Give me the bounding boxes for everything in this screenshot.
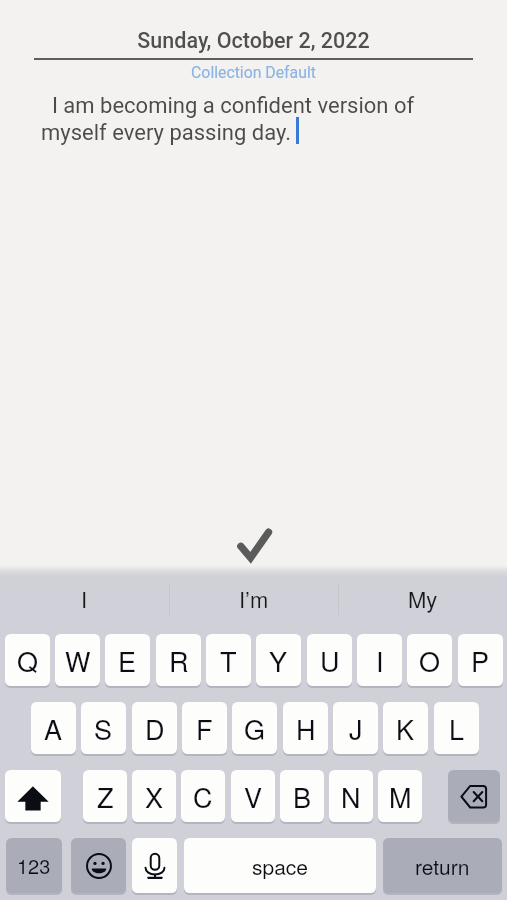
staticText: T <box>220 641 237 680</box>
staticText: V <box>244 777 263 816</box>
staticText: A <box>44 709 63 748</box>
staticText: L <box>449 709 465 748</box>
staticText: I’m <box>239 583 269 615</box>
button[interactable]: L <box>434 702 479 754</box>
button[interactable]: Shift <box>5 770 61 822</box>
staticText: C <box>193 777 213 816</box>
staticText: M <box>389 777 412 816</box>
button[interactable]: O <box>407 634 452 686</box>
button[interactable]: R <box>156 634 201 686</box>
staticText: U <box>320 641 340 680</box>
staticText: space <box>252 851 309 881</box>
staticText: Y <box>269 641 288 680</box>
button[interactable]: return <box>383 838 502 893</box>
staticText: S <box>94 709 113 748</box>
staticText: K <box>396 709 415 748</box>
button[interactable]: I <box>0 566 169 632</box>
staticText: 123 <box>17 851 51 880</box>
button[interactable]: T <box>206 634 251 686</box>
staticText: Sunday, October 2, 2022 <box>0 28 507 53</box>
button[interactable]: My <box>338 566 507 632</box>
staticText: I am becoming a confident version of mys… <box>41 93 433 146</box>
staticText: P <box>471 641 490 680</box>
staticText: W <box>65 641 91 680</box>
staticText: D <box>145 709 165 748</box>
button[interactable]: space <box>184 838 376 893</box>
button[interactable]: I’m <box>169 566 338 632</box>
button[interactable]: V <box>231 770 275 822</box>
staticText: H <box>296 709 316 748</box>
staticText: R <box>169 641 189 680</box>
button[interactable]: K <box>383 702 428 754</box>
staticText: Q <box>17 641 39 680</box>
button[interactable]: S <box>81 702 126 754</box>
staticText: O <box>419 641 441 680</box>
button[interactable]: G <box>232 702 277 754</box>
button[interactable]: I <box>357 634 402 686</box>
staticText: I <box>81 583 88 615</box>
staticText: G <box>244 709 266 748</box>
button[interactable]: X <box>132 770 176 822</box>
button[interactable]: Z <box>83 770 127 822</box>
staticText: X <box>145 777 164 816</box>
staticText: My <box>408 583 438 615</box>
button[interactable]: Q <box>5 634 50 686</box>
button[interactable]: D <box>132 702 177 754</box>
button[interactable]: Y <box>256 634 301 686</box>
staticText: Collection Default <box>0 63 507 82</box>
button[interactable]: A <box>31 702 76 754</box>
button[interactable]: B <box>280 770 324 822</box>
button[interactable]: W <box>55 634 100 686</box>
button[interactable]: N <box>329 770 373 822</box>
staticText: N <box>341 777 361 816</box>
button[interactable]: Voice dictation <box>132 838 177 893</box>
button[interactable]: H <box>283 702 328 754</box>
staticText: I <box>376 641 384 680</box>
button[interactable]: P <box>458 634 503 686</box>
staticText: E <box>118 641 137 680</box>
button[interactable]: U <box>307 634 352 686</box>
button[interactable]: Emoji keyboard <box>71 838 126 893</box>
button[interactable]: Backspace <box>448 770 500 822</box>
button[interactable]: 123 <box>6 838 62 893</box>
button[interactable]: F <box>182 702 227 754</box>
button[interactable]: Save note <box>230 521 278 569</box>
staticText: F <box>196 709 213 748</box>
staticText: B <box>293 777 312 816</box>
button[interactable]: J <box>333 702 378 754</box>
button[interactable]: M <box>378 770 422 822</box>
staticText: J <box>349 709 363 748</box>
staticText: Z <box>97 777 114 816</box>
button[interactable]: E <box>105 634 150 686</box>
staticText: return <box>415 851 470 881</box>
button[interactable]: C <box>181 770 225 822</box>
